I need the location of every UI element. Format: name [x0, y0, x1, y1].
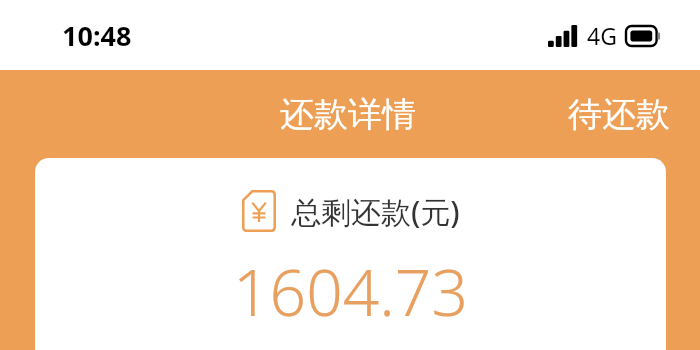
- staticText: 还款详情: [280, 93, 416, 136]
- button[interactable]: 总剩还款(元): [35, 158, 666, 350]
- staticText: 10:48: [62, 17, 132, 54]
- button[interactable]: 待还款: [560, 87, 678, 142]
- staticText: 待还款: [568, 93, 670, 136]
- button[interactable]: 还款详情: [272, 87, 424, 142]
- staticText: 4G: [587, 20, 617, 51]
- staticText: 1604.73: [233, 248, 468, 335]
- staticText: 总剩还款(元): [291, 191, 460, 232]
